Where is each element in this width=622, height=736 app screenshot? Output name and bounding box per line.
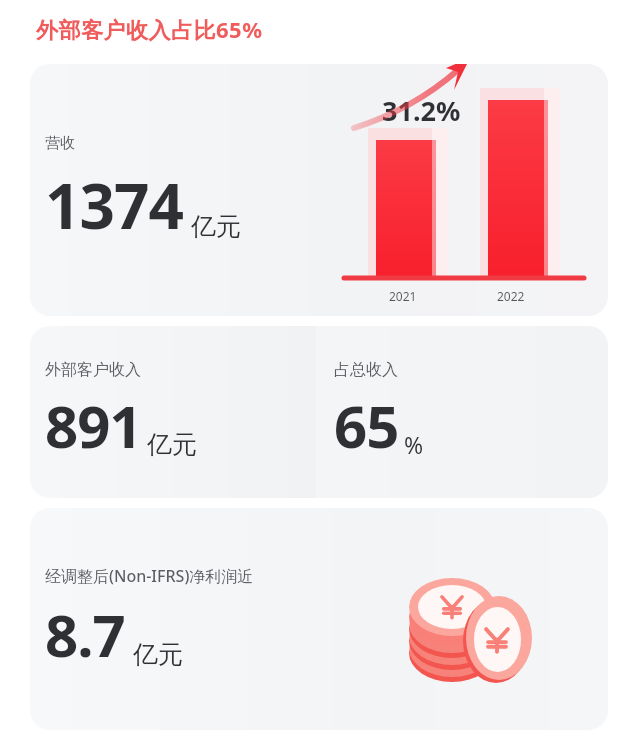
staticText: 65 <box>334 386 399 465</box>
staticText: 2021 <box>389 288 417 304</box>
staticText: 经调整后(Non-IFRS)净利润近 <box>45 565 254 587</box>
staticText: 8.7 <box>45 595 125 674</box>
other: Profit coins <box>398 549 538 689</box>
staticText: 营收 <box>45 134 75 153</box>
button[interactable]: 占总收入 <box>316 326 608 498</box>
staticText: 31.2% <box>382 92 461 129</box>
staticText: 占总收入 <box>334 360 398 380</box>
button[interactable]: 经调整后(Non-IFRS)净利润近 <box>30 508 608 730</box>
staticText: 891 <box>45 386 142 465</box>
staticText: 2022 <box>497 288 525 304</box>
staticText: 外部客户收入 <box>45 360 141 380</box>
staticText: % <box>404 429 424 460</box>
staticText: 外部客户收入占比65% <box>36 14 263 44</box>
staticText: 亿元 <box>147 429 197 460</box>
staticText: 亿元 <box>191 211 241 242</box>
button[interactable]: 营收 <box>30 64 608 316</box>
staticText: 亿元 <box>133 639 183 670</box>
button[interactable]: 外部客户收入 <box>30 326 316 498</box>
staticText: 1374 <box>45 163 183 247</box>
